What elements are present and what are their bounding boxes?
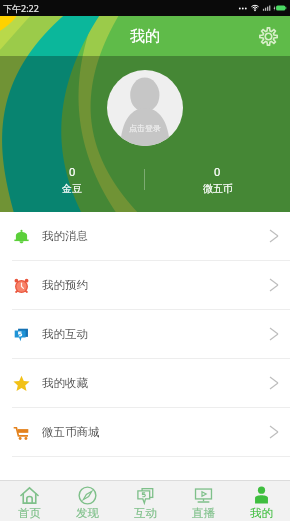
staticText: 我的互动 bbox=[42, 327, 88, 341]
button[interactable]: Settings bbox=[255, 23, 281, 49]
button[interactable]: 我的 bbox=[232, 481, 290, 521]
button[interactable]: 我的收藏 bbox=[0, 359, 290, 407]
button[interactable]: 发现 bbox=[58, 481, 116, 521]
staticText: 我的预约 bbox=[42, 278, 88, 292]
staticText: 我的 bbox=[130, 27, 160, 46]
staticText: 发现 bbox=[76, 506, 99, 520]
button[interactable]: 0 bbox=[145, 161, 290, 197]
staticText: 微五币商城 bbox=[42, 425, 100, 439]
staticText: 我的消息 bbox=[42, 229, 88, 243]
button[interactable]: 我的消息 bbox=[0, 212, 290, 260]
button[interactable]: 互动 bbox=[116, 481, 174, 521]
staticText: 首页 bbox=[18, 506, 41, 520]
staticText: 直播 bbox=[192, 506, 215, 520]
staticText: 点击登录 bbox=[129, 123, 161, 133]
staticText: 金豆 bbox=[62, 182, 82, 195]
staticText: 微五币 bbox=[203, 182, 233, 195]
staticText: 互动 bbox=[134, 506, 157, 520]
button[interactable]: 首页 bbox=[0, 481, 58, 521]
staticText: 0 bbox=[69, 164, 76, 179]
button[interactable]: 我的预约 bbox=[0, 261, 290, 309]
button[interactable]: 0 bbox=[0, 161, 144, 197]
button[interactable]: 微五币商城 bbox=[0, 408, 290, 456]
button[interactable]: 我的互动 bbox=[0, 310, 290, 358]
staticText: 我的 bbox=[250, 506, 273, 520]
staticText: 我的收藏 bbox=[42, 376, 88, 390]
button[interactable]: 点击登录 bbox=[107, 70, 183, 146]
staticText: 0 bbox=[214, 164, 221, 179]
button[interactable]: 直播 bbox=[174, 481, 232, 521]
staticText: 下午2:22 bbox=[3, 2, 39, 14]
